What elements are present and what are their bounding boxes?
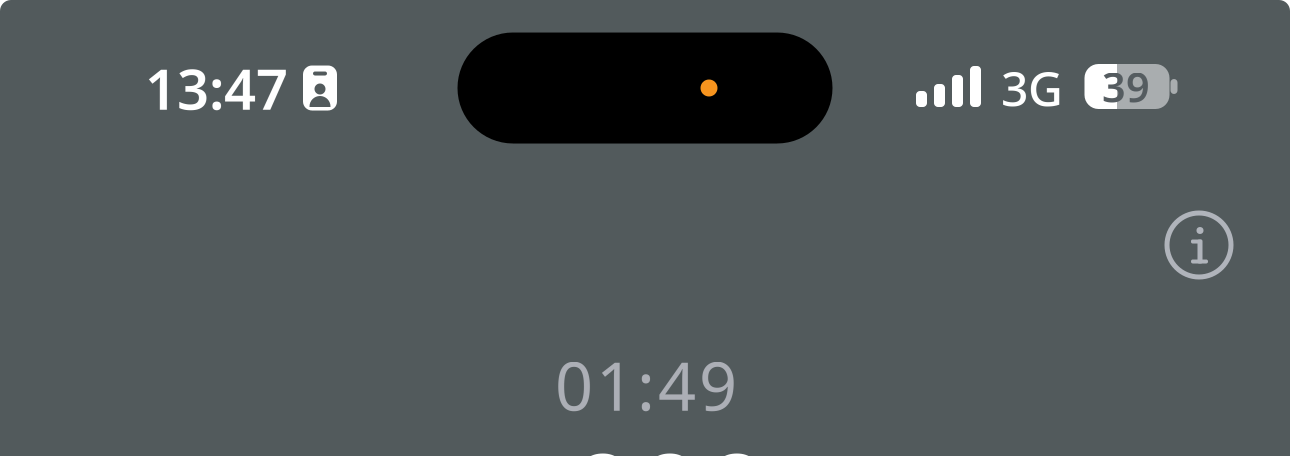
staticText: 000 [569,415,770,456]
button[interactable]: Call info [1155,201,1243,289]
staticText: 3G [1001,56,1063,120]
staticText: 01:49 [555,341,737,429]
staticText: 13:47 [145,51,288,125]
staticText: 39 [1102,59,1150,114]
